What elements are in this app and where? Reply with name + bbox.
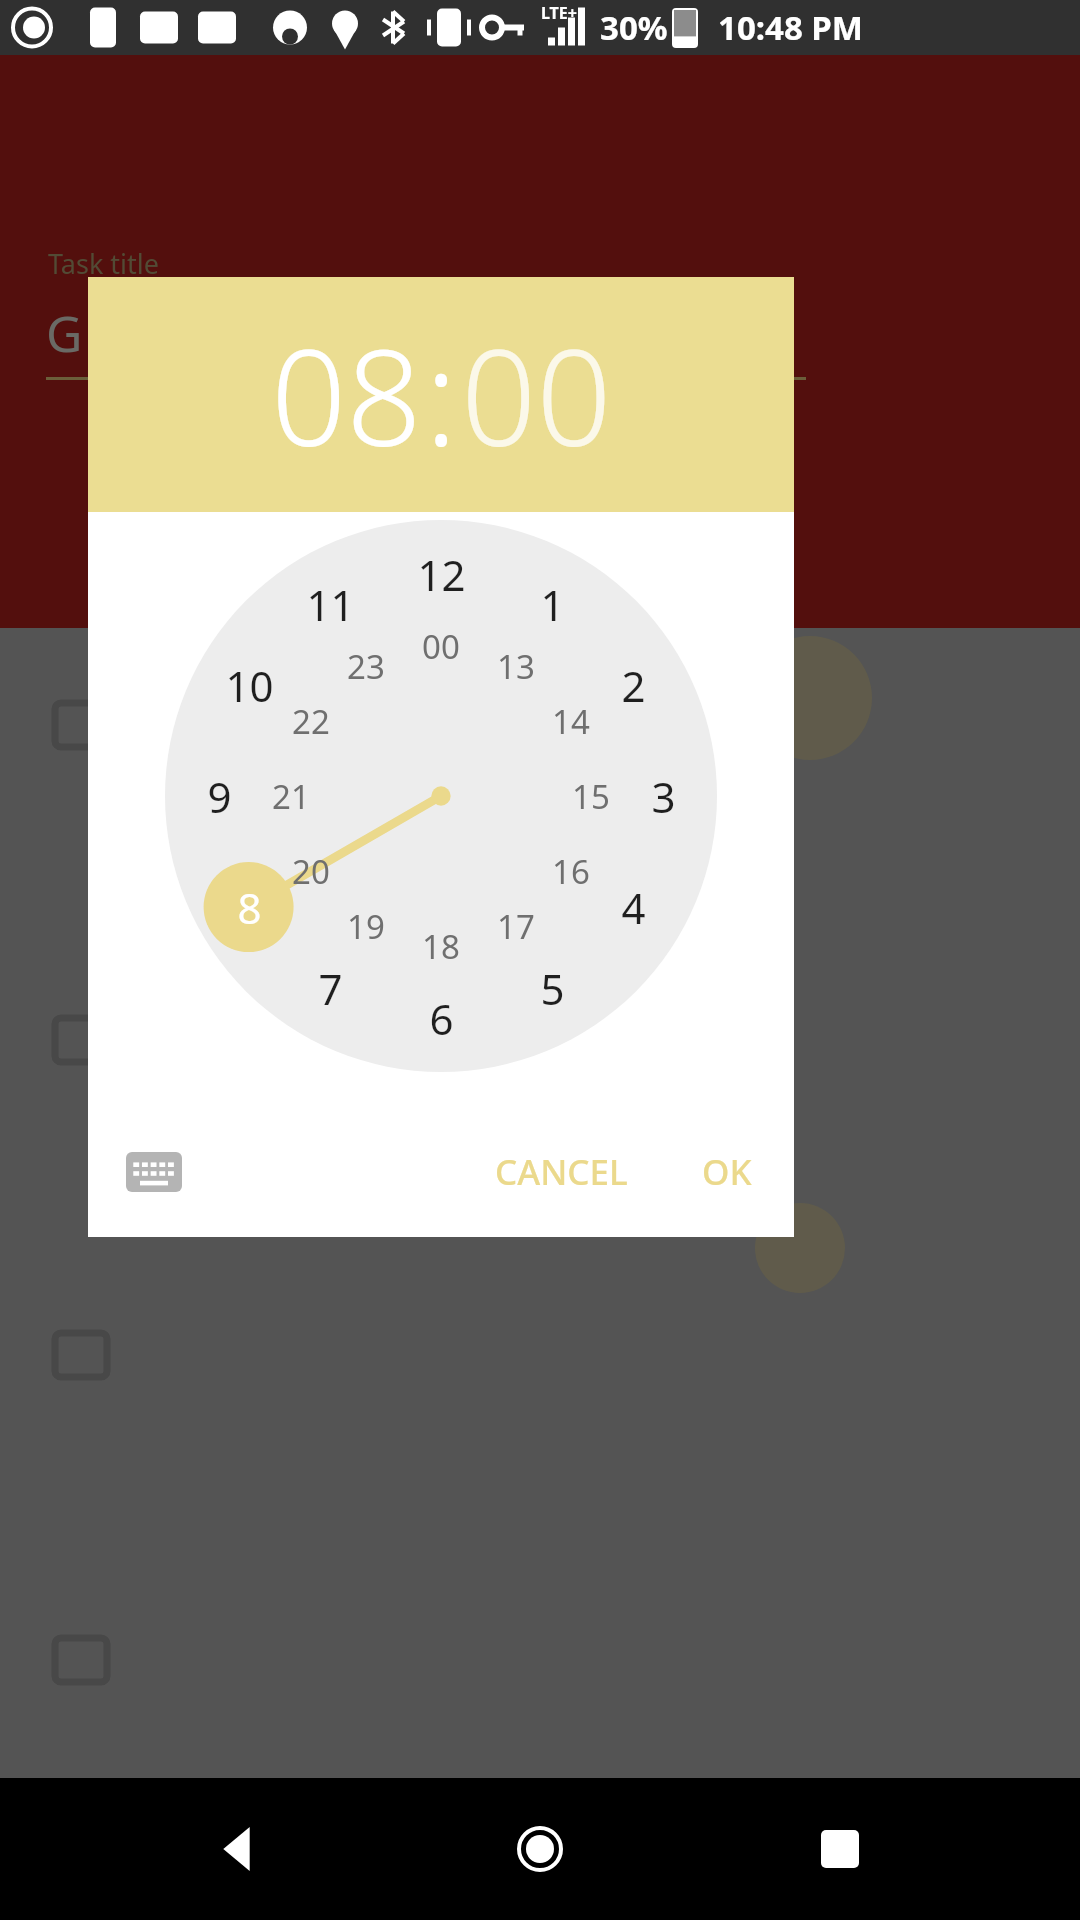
button[interactable]: 20 — [271, 831, 351, 911]
staticText: 8 — [237, 879, 262, 936]
staticText: 22 — [292, 699, 330, 744]
button[interactable]: 3 — [623, 756, 703, 836]
button[interactable]: 22 — [271, 681, 351, 761]
staticText: 15 — [572, 774, 610, 819]
button[interactable]: 18 — [401, 906, 481, 986]
button[interactable]: 00 — [461, 305, 612, 485]
staticText: 4 — [621, 879, 646, 936]
staticText: 19 — [347, 904, 385, 949]
button[interactable]: CANCEL — [477, 1134, 646, 1210]
button[interactable]: Recent apps — [780, 1789, 900, 1909]
staticText: 08 — [271, 305, 422, 485]
staticText: 00 — [461, 305, 612, 485]
staticText: 23 — [347, 644, 385, 689]
button[interactable]: 1 — [512, 564, 592, 644]
button[interactable]: Switch to keyboard input — [112, 1130, 196, 1214]
staticText: G — [46, 299, 83, 367]
button[interactable]: 8 — [209, 867, 289, 947]
staticText: 10:48 PM — [718, 5, 863, 50]
staticText: 10 — [225, 657, 274, 714]
button[interactable]: 17 — [476, 886, 556, 966]
button[interactable]: 19 — [326, 886, 406, 966]
button[interactable]: 7 — [290, 948, 370, 1028]
staticText: 3 — [651, 768, 676, 825]
button[interactable]: 5 — [512, 948, 592, 1028]
staticText: 17 — [497, 904, 535, 949]
staticText: 00 — [422, 624, 460, 669]
staticText: 18 — [422, 924, 460, 969]
staticText: 13 — [497, 644, 535, 689]
button[interactable]: 10 — [209, 645, 289, 725]
button[interactable]: 2 — [593, 645, 673, 725]
button[interactable]: 00 — [401, 606, 481, 686]
button[interactable]: 4 — [593, 867, 673, 947]
staticText: 11 — [306, 576, 355, 633]
button[interactable]: 12 — [401, 534, 481, 614]
staticText: 6 — [429, 990, 454, 1047]
staticText: 7 — [318, 960, 343, 1017]
button[interactable]: OK — [684, 1134, 770, 1210]
staticText: 5 — [540, 960, 565, 1017]
staticText: 21 — [272, 774, 310, 819]
staticText: Task title — [48, 245, 160, 282]
staticText: 14 — [552, 699, 590, 744]
button[interactable]: 21 — [251, 756, 331, 836]
button[interactable]: 13 — [476, 626, 556, 706]
staticText: LTE+ — [541, 2, 577, 24]
staticText: 12 — [417, 546, 466, 603]
staticText: 20 — [292, 849, 330, 894]
button[interactable]: 14 — [531, 681, 611, 761]
button[interactable]: Back — [180, 1789, 300, 1909]
staticText: 16 — [552, 849, 590, 894]
button[interactable]: 08 — [271, 305, 422, 485]
button[interactable]: 9 — [179, 756, 259, 836]
button[interactable]: 6 — [401, 978, 481, 1058]
button[interactable]: Home — [480, 1789, 600, 1909]
staticText: CANCEL — [495, 1148, 628, 1196]
button[interactable]: 11 — [290, 564, 370, 644]
staticText: 30% — [600, 5, 668, 50]
button[interactable]: 16 — [531, 831, 611, 911]
staticText: 2 — [621, 657, 646, 714]
staticText: 1 — [540, 576, 565, 633]
button[interactable]: 23 — [326, 626, 406, 706]
button[interactable]: 15 — [551, 756, 631, 836]
staticText: OK — [702, 1148, 752, 1196]
staticText: 9 — [207, 768, 232, 825]
staticText: : — [425, 305, 458, 485]
